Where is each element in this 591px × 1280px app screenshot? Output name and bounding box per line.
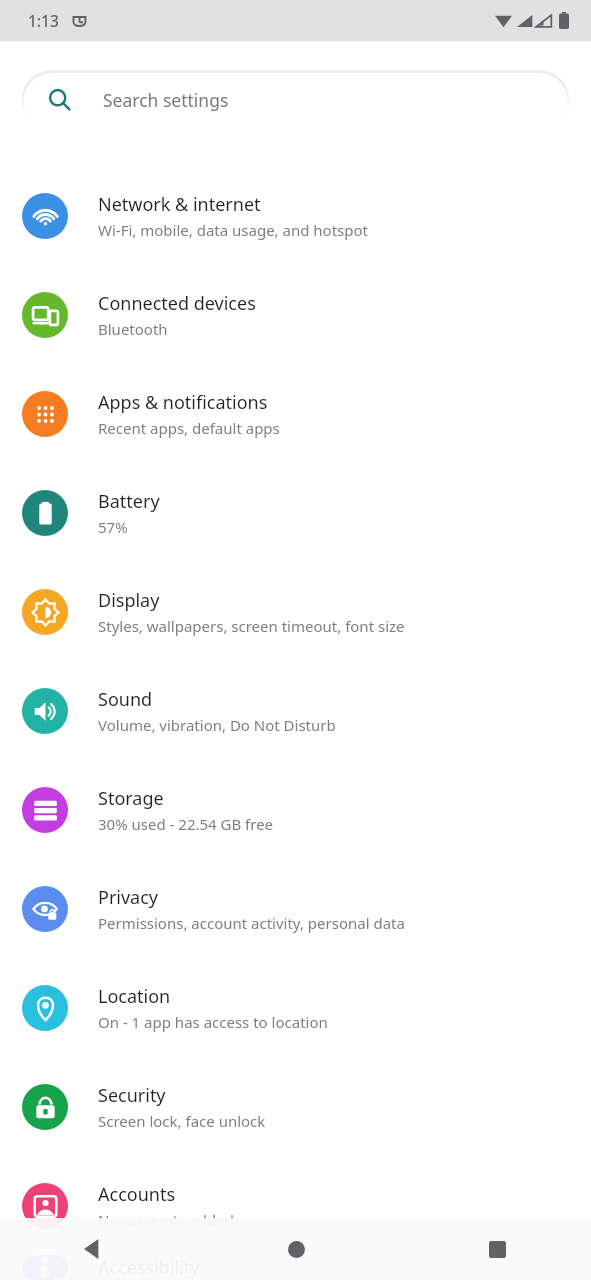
staticText: 30% used - 22.54 GB free — [98, 814, 274, 834]
staticText: 1:13 — [28, 10, 59, 31]
staticText: Recent apps, default apps — [98, 418, 280, 438]
staticText: Screen lock, face unlock — [98, 1111, 266, 1131]
button[interactable]: Sound — [0, 661, 591, 760]
staticText: Network & internet — [98, 192, 261, 217]
staticText: Privacy — [98, 885, 159, 910]
button[interactable]: Security — [0, 1057, 591, 1156]
staticText: Permissions, account activity, personal … — [98, 913, 405, 933]
button[interactable]: Home — [272, 1225, 320, 1273]
button[interactable]: Battery — [0, 463, 591, 562]
staticText: Styles, wallpapers, screen timeout, font… — [98, 616, 405, 636]
staticText: Location — [98, 984, 171, 1009]
staticText: Storage — [98, 786, 164, 811]
staticText: Display — [98, 588, 160, 613]
staticText: Sound — [98, 687, 153, 712]
staticText: Wi-Fi, mobile, data usage, and hotspot — [98, 220, 368, 240]
staticText: Battery — [98, 489, 160, 514]
button[interactable]: Accounts — [0, 1156, 591, 1255]
staticText: Search settings — [103, 88, 229, 112]
staticText: Volume, vibration, Do Not Disturb — [98, 715, 336, 735]
staticText: Apps & notifications — [98, 390, 268, 415]
staticText: 57% — [98, 517, 128, 537]
button[interactable]: Storage — [0, 760, 591, 859]
button[interactable]: Accessibility — [0, 1255, 591, 1280]
button[interactable]: Back — [70, 1225, 118, 1273]
staticText: Bluetooth — [98, 319, 168, 339]
button[interactable]: Location — [0, 958, 591, 1057]
staticText: Accounts — [98, 1182, 176, 1207]
staticText: On - 1 app has access to location — [98, 1012, 328, 1032]
staticText: No accounts added — [98, 1210, 234, 1230]
button[interactable]: Display — [0, 562, 591, 661]
button[interactable]: Recent apps — [473, 1225, 521, 1273]
button[interactable]: Search settings — [22, 69, 569, 130]
button[interactable]: Connected devices — [0, 265, 591, 364]
staticText: Accessibility — [98, 1255, 200, 1280]
staticText: Security — [98, 1083, 166, 1108]
button[interactable]: Apps & notifications — [0, 364, 591, 463]
button[interactable]: Network & internet — [0, 166, 591, 265]
staticText: Connected devices — [98, 291, 256, 316]
button[interactable]: Privacy — [0, 859, 591, 958]
